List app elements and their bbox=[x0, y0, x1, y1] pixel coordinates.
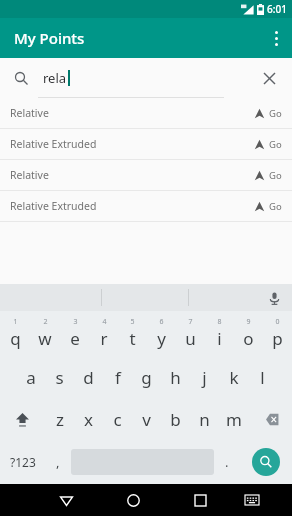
button[interactable]: Home bbox=[115, 484, 151, 516]
staticText: Go bbox=[269, 138, 282, 151]
staticText: Go bbox=[269, 169, 282, 182]
button[interactable]: 9 bbox=[234, 311, 263, 356]
staticText: m bbox=[226, 408, 242, 431]
button[interactable]: x bbox=[74, 398, 103, 440]
button[interactable]: l bbox=[248, 356, 277, 398]
staticText: t bbox=[129, 327, 136, 350]
staticText: 1 bbox=[13, 317, 18, 327]
button[interactable]: c bbox=[103, 398, 132, 440]
button[interactable]: m bbox=[219, 398, 248, 440]
staticText: k bbox=[229, 366, 239, 389]
staticText: s bbox=[55, 366, 64, 389]
button[interactable]: Relative bbox=[0, 98, 292, 128]
button[interactable]: z bbox=[45, 398, 74, 440]
button[interactable]: ?123 bbox=[0, 440, 45, 484]
button[interactable]: s bbox=[45, 356, 74, 398]
button[interactable]: Relative Extruded bbox=[0, 191, 292, 221]
staticText: a bbox=[26, 366, 36, 389]
staticText: Relative bbox=[10, 106, 49, 120]
staticText: Relative bbox=[10, 168, 49, 182]
button[interactable]: b bbox=[161, 398, 190, 440]
staticText: Go bbox=[269, 107, 282, 120]
button[interactable]: d bbox=[74, 356, 103, 398]
staticText: 5 bbox=[130, 317, 135, 327]
staticText: 2 bbox=[43, 317, 48, 327]
button[interactable]: Back bbox=[48, 484, 84, 516]
button[interactable]: a bbox=[16, 356, 45, 398]
staticText: c bbox=[113, 408, 122, 431]
button[interactable]: j bbox=[190, 356, 219, 398]
staticText: My Points bbox=[14, 28, 85, 48]
staticText: r bbox=[100, 327, 108, 350]
staticText: 8 bbox=[217, 317, 222, 327]
button[interactable]: 4 bbox=[89, 311, 118, 356]
staticText: rela bbox=[43, 69, 67, 87]
staticText: i bbox=[217, 327, 222, 350]
staticText: 6 bbox=[159, 317, 164, 327]
staticText: q bbox=[10, 327, 21, 350]
staticText: , bbox=[56, 453, 60, 471]
button[interactable]: 0 bbox=[263, 311, 292, 356]
staticText: Relative Extruded bbox=[10, 137, 97, 151]
button[interactable]: f bbox=[103, 356, 132, 398]
staticText: n bbox=[199, 408, 210, 431]
staticText: ?123 bbox=[10, 454, 36, 470]
staticText: v bbox=[142, 408, 151, 431]
staticText: 6:01 bbox=[267, 2, 287, 16]
button[interactable]: g bbox=[132, 356, 161, 398]
staticText: 4 bbox=[102, 317, 107, 327]
staticText: h bbox=[170, 366, 181, 389]
button[interactable]: Relative Extruded bbox=[0, 129, 292, 159]
button[interactable]: Search bbox=[252, 448, 280, 476]
staticText: l bbox=[260, 366, 265, 389]
button[interactable]: Voice input bbox=[264, 288, 284, 308]
button[interactable]: k bbox=[219, 356, 248, 398]
button[interactable]: More options bbox=[260, 18, 292, 58]
button[interactable]: Relative bbox=[0, 160, 292, 190]
button[interactable]: 7 bbox=[176, 311, 205, 356]
button[interactable]: 3 bbox=[60, 311, 89, 356]
button[interactable]: n bbox=[190, 398, 219, 440]
button[interactable]: 1 bbox=[0, 311, 30, 356]
button[interactable]: 6 bbox=[147, 311, 176, 356]
staticText: w bbox=[38, 327, 52, 350]
button[interactable]: Recent apps bbox=[182, 484, 218, 516]
staticText: 3 bbox=[73, 317, 78, 327]
staticText: z bbox=[56, 408, 64, 431]
button[interactable]: h bbox=[161, 356, 190, 398]
staticText: 7 bbox=[188, 317, 193, 327]
other: Search bbox=[14, 71, 29, 86]
button[interactable]: Backspace bbox=[248, 398, 292, 440]
staticText: e bbox=[70, 327, 80, 350]
staticText: p bbox=[272, 327, 283, 350]
button[interactable]: Clear search bbox=[256, 65, 282, 91]
button[interactable]: 8 bbox=[205, 311, 234, 356]
staticText: d bbox=[83, 366, 94, 389]
staticText: . bbox=[225, 453, 229, 471]
staticText: o bbox=[243, 327, 254, 350]
button[interactable]: , bbox=[45, 440, 71, 484]
button[interactable]: . bbox=[214, 440, 240, 484]
staticText: g bbox=[141, 366, 152, 389]
staticText: Relative Extruded bbox=[10, 199, 97, 213]
staticText: y bbox=[157, 327, 166, 350]
staticText: Go bbox=[269, 200, 282, 213]
staticText: u bbox=[185, 327, 196, 350]
button[interactable]: 5 bbox=[118, 311, 147, 356]
staticText: 0 bbox=[275, 317, 280, 327]
button[interactable]: 2 bbox=[30, 311, 60, 356]
button[interactable]: Shift bbox=[0, 398, 45, 440]
staticText: j bbox=[202, 366, 207, 389]
staticText: 9 bbox=[246, 317, 251, 327]
staticText: b bbox=[170, 408, 181, 431]
staticText: x bbox=[84, 408, 93, 431]
button[interactable]: Hide keyboard bbox=[234, 484, 270, 516]
staticText: f bbox=[115, 366, 121, 389]
button[interactable]: v bbox=[132, 398, 161, 440]
